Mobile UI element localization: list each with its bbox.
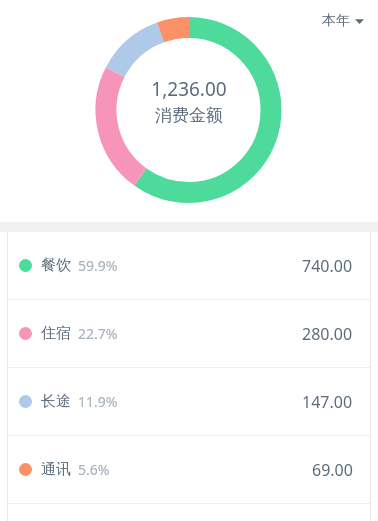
staticText: 22.7% <box>78 324 118 343</box>
staticText: 消费金额 <box>109 105 269 126</box>
staticText: 长途 <box>41 392 71 411</box>
staticText: 1,236.00 <box>109 76 269 102</box>
staticText: 5.6% <box>78 460 110 479</box>
staticText: 餐饮 <box>41 256 71 275</box>
staticText: 280.00 <box>302 323 353 345</box>
staticText: 住宿 <box>41 324 71 343</box>
staticText: 本年 <box>322 12 350 30</box>
button[interactable]: 餐饮 <box>7 232 371 299</box>
staticText: 147.00 <box>302 391 353 413</box>
staticText: 740.00 <box>302 255 353 277</box>
button[interactable]: 住宿 <box>7 300 371 367</box>
staticText: 11.9% <box>78 392 118 411</box>
button[interactable]: 通讯 <box>7 436 371 503</box>
staticText: 69.00 <box>312 459 353 481</box>
other: Expense donut chart <box>0 0 378 222</box>
staticText: 通讯 <box>41 460 71 479</box>
button[interactable]: 长途 <box>7 368 371 435</box>
button[interactable]: 本年 <box>318 9 368 33</box>
staticText: 59.9% <box>78 256 118 275</box>
